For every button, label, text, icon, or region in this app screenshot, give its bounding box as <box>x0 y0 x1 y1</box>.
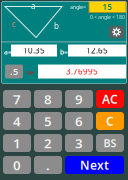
staticText: 3.76995 <box>66 66 98 77</box>
staticText: 12.65 <box>86 45 108 56</box>
staticText: 2 <box>44 134 52 152</box>
button[interactable]: Next <box>65 156 124 174</box>
staticText: 4 <box>13 112 21 130</box>
button[interactable]: AC <box>96 90 124 108</box>
staticText: .5 <box>10 65 18 78</box>
staticText: a= <box>4 47 12 56</box>
button[interactable]: BS <box>96 134 124 152</box>
button[interactable]: 2 <box>34 134 62 152</box>
button[interactable]: C <box>96 112 124 130</box>
button[interactable]: .5 <box>5 64 23 78</box>
staticText: C <box>106 113 114 129</box>
staticText: 15 <box>102 2 112 12</box>
staticText: 0 < angle < 180 <box>90 13 125 21</box>
staticText: a <box>31 0 35 11</box>
staticText: 0 <box>13 156 21 174</box>
staticText: 1 <box>13 134 21 152</box>
staticText: c= <box>27 67 34 76</box>
staticText: 10.35 <box>23 45 45 56</box>
button[interactable]: 3 <box>65 134 93 152</box>
button[interactable]: 8 <box>34 90 62 108</box>
staticText: 3 <box>75 134 83 152</box>
button[interactable]: . <box>34 156 62 174</box>
staticText: c <box>12 18 16 29</box>
staticText: 9 <box>75 90 83 108</box>
staticText: 8 <box>44 90 52 108</box>
staticText: 5 <box>44 112 52 130</box>
button[interactable]: 9 <box>65 90 93 108</box>
button[interactable]: 15 <box>89 1 126 12</box>
staticText: BS <box>103 136 116 150</box>
button[interactable]: 6 <box>65 112 93 130</box>
button[interactable]: 12.65 <box>68 44 126 56</box>
button[interactable]: Settings <box>109 25 124 38</box>
button[interactable]: 5 <box>34 112 62 130</box>
staticText: 6 <box>75 112 83 130</box>
staticText: . <box>46 156 50 174</box>
button[interactable]: 10.35 <box>11 44 57 56</box>
staticText: angle= <box>70 3 86 11</box>
button[interactable]: 7 <box>3 90 31 108</box>
staticText: b= <box>60 47 68 56</box>
staticText: Next <box>80 157 109 173</box>
button[interactable]: 0 <box>3 156 31 174</box>
staticText: b <box>54 20 59 31</box>
button[interactable]: 1 <box>3 134 31 152</box>
staticText: AC <box>102 91 118 107</box>
staticText: 7 <box>13 90 21 108</box>
button[interactable]: 4 <box>3 112 31 130</box>
